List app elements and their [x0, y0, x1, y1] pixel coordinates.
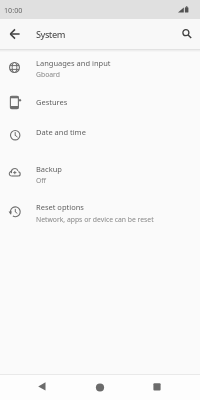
- staticText: Languages and input: [36, 58, 111, 68]
- staticText: Date and time: [36, 127, 86, 137]
- staticText: Backup: [36, 164, 62, 174]
- button[interactable]: [29, 375, 55, 400]
- staticText: Reset options: [36, 202, 84, 212]
- staticText: Network, apps or device can be reset: [36, 215, 154, 224]
- button[interactable]: [4, 22, 28, 46]
- button[interactable]: Date and time: [0, 120, 200, 150]
- button[interactable]: [87, 375, 113, 400]
- button[interactable]: [174, 21, 198, 45]
- button[interactable]: Languages and input: [0, 52, 200, 86]
- button[interactable]: Reset options: [0, 194, 200, 228]
- button[interactable]: Gestures: [0, 88, 200, 118]
- staticText: Gestures: [36, 97, 68, 107]
- staticText: System: [36, 28, 65, 41]
- button[interactable]: [144, 375, 170, 400]
- staticText: Off: [36, 176, 46, 185]
- button[interactable]: Backup: [0, 156, 200, 190]
- staticText: Gboard: [36, 70, 60, 79]
- staticText: 10:00: [4, 5, 23, 15]
